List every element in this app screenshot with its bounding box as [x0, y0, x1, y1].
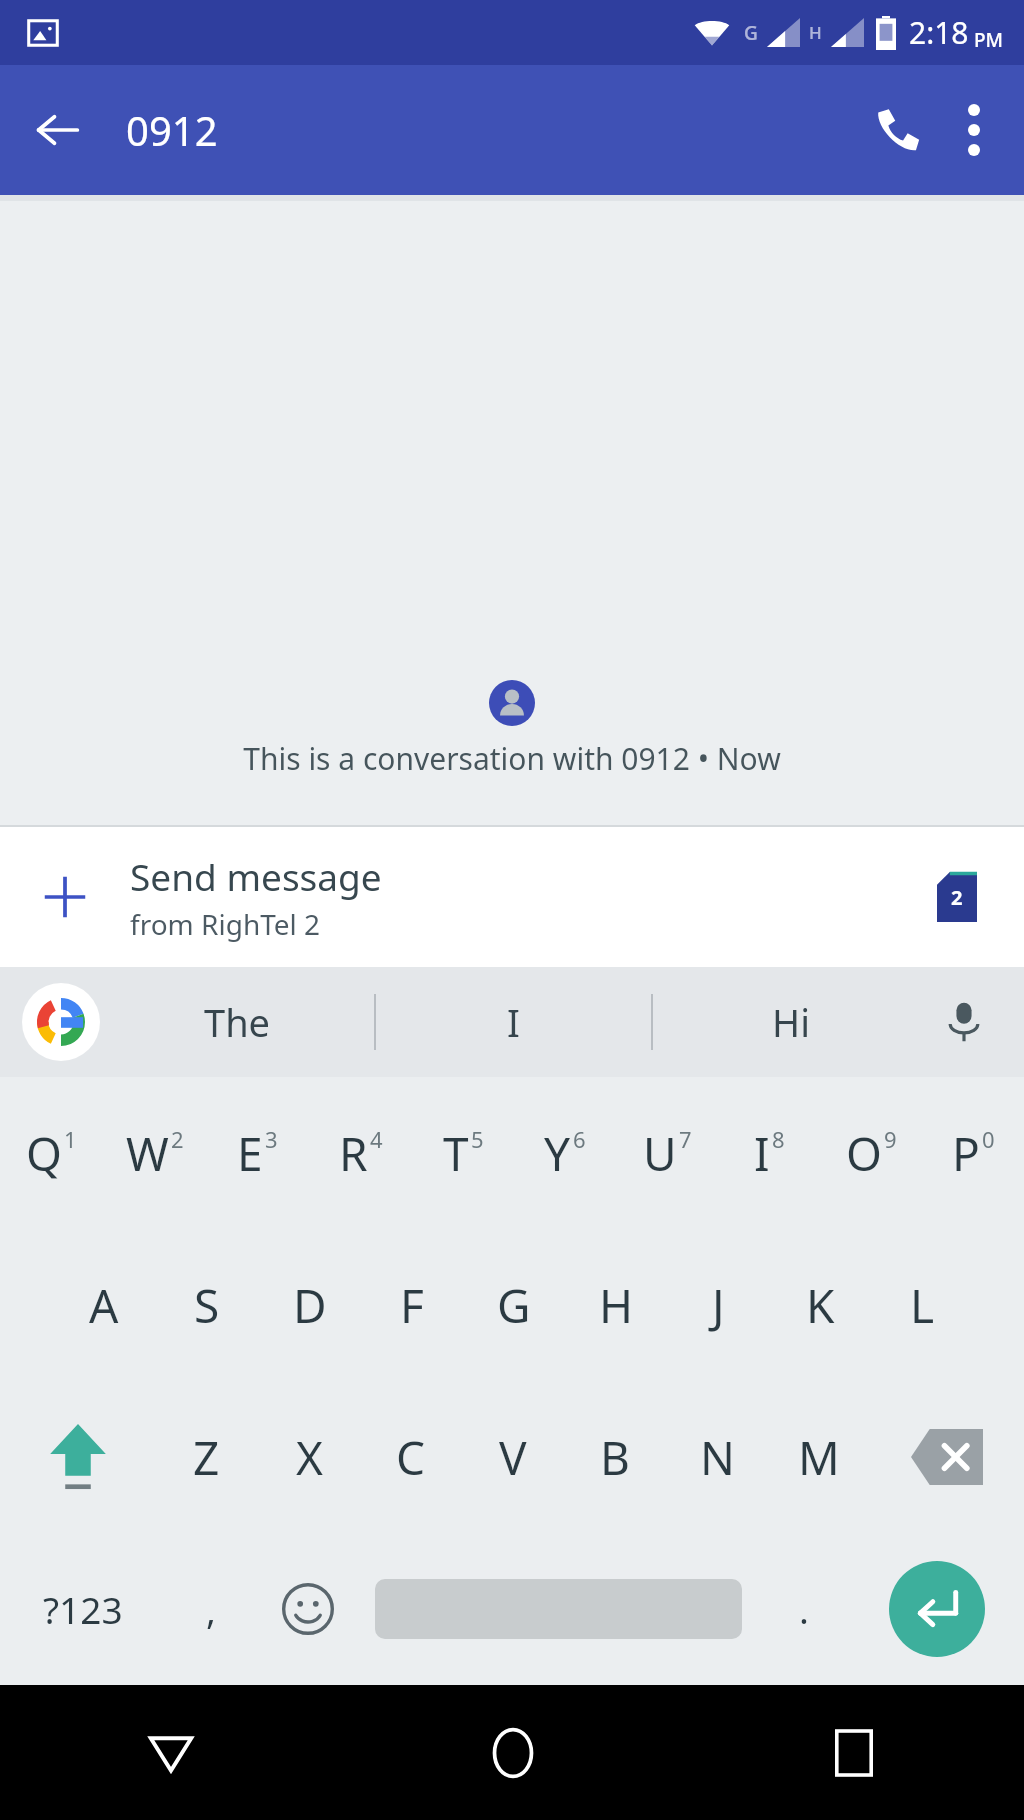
button[interactable]: K: [769, 1229, 871, 1381]
button[interactable]: .: [758, 1533, 850, 1685]
staticText: O: [846, 1122, 882, 1185]
button[interactable]: Back: [22, 94, 94, 166]
button[interactable]: Attach: [26, 858, 104, 936]
staticText: 7: [679, 1124, 692, 1154]
staticText: 2: [171, 1124, 184, 1154]
button[interactable]: Backspace: [870, 1381, 1024, 1533]
button[interactable]: D: [258, 1229, 361, 1381]
staticText: 6: [573, 1124, 586, 1154]
button[interactable]: H: [565, 1229, 667, 1381]
staticText: C: [396, 1426, 426, 1489]
button[interactable]: E: [206, 1077, 309, 1229]
staticText: Y: [544, 1122, 571, 1185]
button[interactable]: J: [667, 1229, 769, 1381]
button[interactable]: Voice input: [928, 986, 1000, 1058]
staticText: This is a conversation with 0912 • Now: [243, 738, 781, 779]
staticText: from RighTel 2: [130, 905, 321, 943]
staticText: G: [497, 1274, 531, 1337]
button[interactable]: Emoji: [257, 1533, 359, 1685]
button[interactable]: R: [309, 1077, 412, 1229]
button[interactable]: Send: [889, 1561, 985, 1657]
button[interactable]: X: [258, 1381, 360, 1533]
button[interactable]: Z: [155, 1381, 258, 1533]
button[interactable]: B: [564, 1381, 666, 1533]
staticText: H: [599, 1274, 634, 1337]
staticText: V: [499, 1426, 527, 1489]
button[interactable]: F: [361, 1229, 463, 1381]
button[interactable]: Y: [514, 1077, 616, 1229]
button[interactable]: W: [103, 1077, 206, 1229]
staticText: 5: [471, 1124, 484, 1154]
staticText: S: [194, 1274, 220, 1337]
staticText: 3: [265, 1124, 278, 1154]
staticText: T: [443, 1122, 469, 1185]
staticText: Q: [26, 1122, 62, 1185]
staticText: R: [339, 1122, 368, 1185]
button[interactable]: G: [463, 1229, 565, 1381]
button[interactable]: L: [871, 1229, 973, 1381]
staticText: ,: [206, 1584, 216, 1634]
staticText: PM: [974, 27, 1004, 53]
staticText: X: [296, 1426, 323, 1489]
staticText: I: [507, 996, 520, 1048]
button[interactable]: More options: [938, 94, 1010, 166]
staticText: Send message: [130, 851, 382, 901]
button[interactable]: Attach: [0, 827, 1024, 967]
button[interactable]: Google: [22, 983, 100, 1061]
staticText: D: [293, 1274, 327, 1337]
button[interactable]: P: [922, 1077, 1024, 1229]
button[interactable]: C: [360, 1381, 462, 1533]
button[interactable]: I: [376, 967, 651, 1077]
staticText: N: [700, 1426, 735, 1489]
button[interactable]: N: [666, 1381, 768, 1533]
staticText: I: [754, 1122, 770, 1185]
staticText: 2: [951, 884, 963, 911]
button[interactable]: Space: [359, 1533, 758, 1685]
button[interactable]: U: [616, 1077, 718, 1229]
staticText: .: [799, 1584, 809, 1634]
staticText: Z: [193, 1426, 220, 1489]
staticText: G: [744, 20, 758, 46]
staticText: P: [952, 1122, 980, 1185]
button[interactable]: O: [820, 1077, 922, 1229]
button[interactable]: The: [100, 967, 374, 1077]
staticText: A: [89, 1274, 119, 1337]
button[interactable]: Shift: [0, 1381, 155, 1533]
button[interactable]: SIM 2: [920, 860, 994, 934]
staticText: E: [237, 1122, 263, 1185]
staticText: L: [910, 1274, 935, 1337]
staticText: ?123: [43, 1584, 123, 1634]
button[interactable]: V: [462, 1381, 564, 1533]
staticText: M: [798, 1426, 840, 1489]
button[interactable]: Hide keyboard: [0, 1685, 342, 1820]
button[interactable]: S: [155, 1229, 258, 1381]
button[interactable]: A: [52, 1229, 155, 1381]
button[interactable]: Home: [342, 1685, 683, 1820]
staticText: 4: [370, 1124, 383, 1154]
staticText: J: [712, 1274, 725, 1337]
button[interactable]: Recent apps: [683, 1685, 1024, 1820]
button[interactable]: T: [412, 1077, 514, 1229]
staticText: 0: [982, 1124, 995, 1154]
staticText: 1: [64, 1124, 77, 1154]
button[interactable]: Q: [0, 1077, 103, 1229]
staticText: W: [126, 1122, 169, 1185]
staticText: K: [806, 1274, 835, 1337]
staticText: H: [809, 21, 822, 44]
button[interactable]: Hi: [653, 967, 928, 1077]
staticText: B: [600, 1426, 630, 1489]
staticText: 9: [884, 1124, 897, 1154]
staticText: Hi: [772, 996, 810, 1048]
button[interactable]: I: [718, 1077, 820, 1229]
button[interactable]: ,: [165, 1533, 257, 1685]
staticText: 8: [772, 1124, 785, 1154]
staticText: F: [400, 1274, 424, 1337]
staticText: 2:18: [909, 12, 969, 53]
button[interactable]: ?123: [0, 1533, 165, 1685]
staticText: U: [643, 1122, 677, 1185]
button[interactable]: M: [768, 1381, 870, 1533]
button[interactable]: Call: [858, 90, 938, 170]
staticText: 0912: [126, 103, 218, 157]
staticText: The: [204, 996, 271, 1048]
